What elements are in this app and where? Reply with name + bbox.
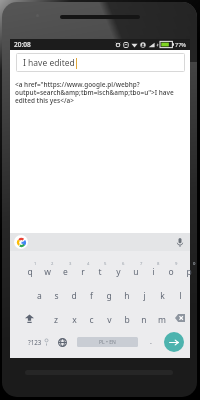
staticText: b	[124, 314, 130, 326]
button[interactable]: Period	[143, 333, 159, 351]
staticText: r	[81, 266, 85, 278]
button[interactable]: c	[82, 307, 100, 329]
button[interactable]: Enter	[164, 332, 184, 352]
button[interactable]: z	[47, 307, 65, 329]
staticText: 6	[122, 261, 125, 267]
button[interactable]: k	[153, 283, 171, 305]
button[interactable]: f	[82, 283, 100, 305]
staticText: 20:08	[14, 40, 31, 49]
staticText: z	[54, 314, 58, 326]
button[interactable]: 8	[144, 259, 162, 281]
staticText: p	[186, 266, 192, 278]
button[interactable]: I have edited	[16, 53, 185, 72]
staticText: f	[90, 290, 93, 302]
staticText: j	[143, 290, 146, 302]
staticText: g	[106, 290, 112, 302]
staticText: t	[98, 266, 102, 278]
staticText: i	[152, 266, 155, 278]
staticText: 3	[69, 261, 72, 267]
button[interactable]: d	[65, 283, 83, 305]
staticText: PL • EN	[99, 339, 116, 346]
staticText: y	[116, 266, 121, 278]
staticText: o	[168, 266, 174, 278]
button[interactable]: h	[118, 283, 136, 305]
staticText: 4	[87, 261, 90, 267]
button[interactable]: a	[30, 283, 48, 305]
staticText: e	[63, 266, 68, 278]
staticText: u	[133, 266, 139, 278]
button[interactable]: Change language	[53, 333, 71, 351]
button[interactable]: 3	[56, 259, 74, 281]
button[interactable]: 7	[127, 259, 145, 281]
button[interactable]: Comma	[37, 333, 55, 351]
button[interactable]: j	[135, 283, 153, 305]
staticText: 0	[193, 261, 196, 267]
staticText: m	[158, 314, 166, 326]
staticText: .	[150, 337, 152, 347]
button[interactable]: 5	[91, 259, 109, 281]
button[interactable]: Voice input	[173, 236, 186, 249]
button[interactable]: Shift	[12, 307, 46, 329]
button[interactable]: 9	[162, 259, 180, 281]
staticText: w	[44, 266, 51, 278]
button[interactable]: s	[47, 283, 65, 305]
staticText: <a href="https://www.google.pl/webhp?out…	[15, 80, 187, 105]
staticText: 1	[34, 261, 37, 267]
button[interactable]: 6	[109, 259, 127, 281]
button[interactable]: 1	[21, 259, 39, 281]
staticText: a	[37, 290, 42, 302]
button[interactable]: 2	[38, 259, 56, 281]
button[interactable]: m	[153, 307, 171, 329]
button[interactable]: Backspace	[170, 307, 190, 329]
button[interactable]: l	[171, 283, 189, 305]
staticText: l	[179, 290, 182, 302]
button[interactable]: v	[100, 307, 118, 329]
button[interactable]: 4	[74, 259, 92, 281]
staticText: 7	[140, 261, 143, 267]
staticText: x	[72, 314, 77, 326]
staticText: 2	[51, 261, 54, 267]
staticText: d	[71, 290, 77, 302]
staticText: v	[107, 314, 112, 326]
button[interactable]: PL • EN	[77, 337, 138, 347]
button[interactable]: b	[118, 307, 136, 329]
staticText: h	[124, 290, 130, 302]
staticText: 9	[175, 261, 178, 267]
staticText: 5	[104, 261, 107, 267]
staticText: 77%	[175, 41, 186, 48]
button[interactable]: Google Search	[14, 235, 28, 249]
staticText: ?123	[28, 338, 42, 346]
staticText: k	[160, 290, 165, 302]
staticText: I have edited	[23, 57, 75, 69]
button[interactable]: x	[65, 307, 83, 329]
staticText: q	[27, 266, 33, 278]
staticText: s	[54, 290, 59, 302]
button[interactable]: g	[100, 283, 118, 305]
button[interactable]: n	[135, 307, 153, 329]
button[interactable]: ?123	[20, 333, 50, 351]
staticText: 8	[157, 261, 160, 267]
button[interactable]: 0	[180, 259, 198, 281]
staticText: c	[89, 314, 94, 326]
staticText: n	[141, 314, 147, 326]
